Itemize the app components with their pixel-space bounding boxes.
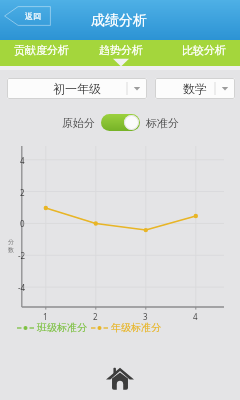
staticText: 数学 bbox=[183, 81, 207, 96]
button[interactable]: 贡献度分析 bbox=[0, 40, 80, 66]
button[interactable]: 初一年级 bbox=[7, 78, 147, 99]
button[interactable]: 比较分析 bbox=[160, 40, 240, 66]
staticText: 3 bbox=[143, 311, 148, 322]
staticText: -2 bbox=[18, 250, 26, 261]
staticText: 数 bbox=[8, 246, 14, 254]
staticText: 返回 bbox=[25, 11, 41, 21]
staticText: 分 bbox=[8, 238, 14, 246]
staticText: 初一年级 bbox=[53, 81, 101, 96]
staticText: 0 bbox=[20, 218, 25, 229]
staticText: -4 bbox=[18, 282, 26, 293]
staticText: 4 bbox=[193, 311, 198, 322]
staticText: 原始分 bbox=[62, 116, 95, 130]
staticText: 2 bbox=[20, 187, 25, 198]
staticText: 趋势分析 bbox=[99, 43, 143, 57]
button[interactable]: 数学 bbox=[155, 78, 235, 99]
staticText: 标准分 bbox=[146, 116, 179, 130]
staticText: 2 bbox=[93, 311, 98, 322]
button[interactable]: 趋势分析 bbox=[80, 40, 160, 66]
staticText: 贡献度分析 bbox=[14, 43, 69, 57]
staticText: 年级标准分 bbox=[111, 321, 161, 334]
staticText: 1 bbox=[43, 311, 48, 322]
button[interactable]: 返回 bbox=[4, 6, 51, 26]
staticText: 班级标准分 bbox=[37, 321, 87, 334]
staticText: 4 bbox=[20, 155, 25, 166]
button[interactable]: 切换标准分 bbox=[101, 114, 140, 131]
button[interactable]: 首页 bbox=[102, 360, 138, 396]
staticText: 成绩分析 bbox=[91, 12, 147, 30]
staticText: 比较分析 bbox=[182, 43, 226, 57]
